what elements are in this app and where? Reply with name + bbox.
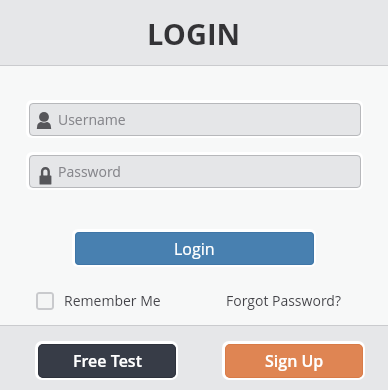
staticText: Remember Me bbox=[64, 291, 161, 310]
button[interactable]: Username bbox=[29, 103, 361, 136]
staticText: LOGIN bbox=[147, 14, 241, 53]
button[interactable]: Login bbox=[72, 229, 316, 267]
button[interactable]: Forgot Password? bbox=[226, 291, 341, 310]
button[interactable]: Remember Me bbox=[36, 291, 161, 310]
staticText: Sign Up bbox=[265, 350, 324, 372]
staticText: Password bbox=[58, 162, 121, 181]
staticText: Login bbox=[174, 238, 215, 260]
staticText: Username bbox=[58, 110, 126, 129]
button[interactable]: Free Test bbox=[35, 341, 178, 380]
button[interactable]: Sign Up bbox=[222, 341, 365, 380]
staticText: Free Test bbox=[73, 350, 142, 372]
button[interactable]: Password bbox=[29, 155, 361, 188]
